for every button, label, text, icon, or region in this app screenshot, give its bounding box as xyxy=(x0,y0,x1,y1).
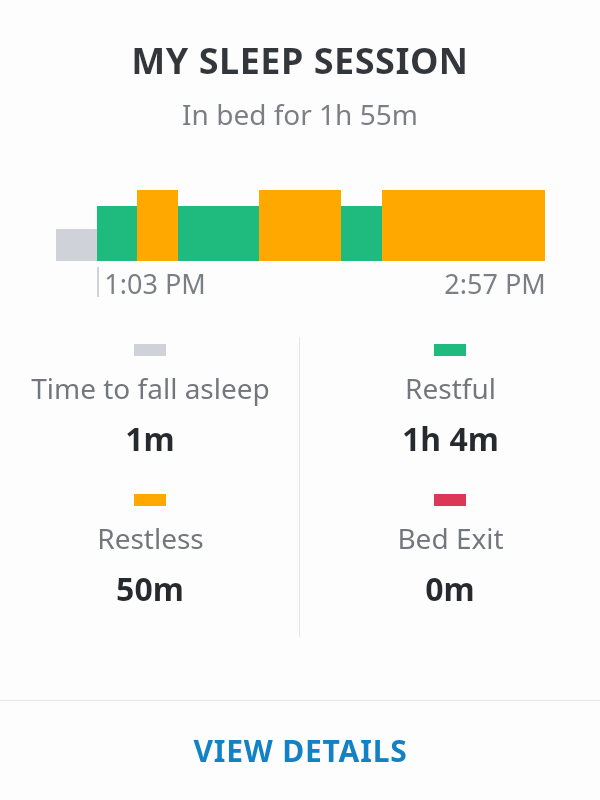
staticText: 2:57 PM xyxy=(444,265,546,302)
staticText: 1h 4m xyxy=(402,417,499,461)
staticText: VIEW DETAILS xyxy=(193,730,408,771)
staticText: Bed Exit xyxy=(397,519,504,557)
staticText: 1:03 PM xyxy=(104,265,206,302)
staticText: Restful xyxy=(405,369,496,407)
button[interactable]: Restful xyxy=(300,337,600,487)
staticText: Time to fall asleep xyxy=(31,369,270,407)
staticText: Restless xyxy=(97,519,204,557)
button[interactable]: VIEW DETAILS xyxy=(0,701,600,800)
staticText: In bed for 1h 55m xyxy=(182,95,418,133)
staticText: 1m xyxy=(125,417,175,461)
staticText: MY SLEEP SESSION xyxy=(131,36,469,85)
button[interactable]: Bed Exit xyxy=(300,487,600,637)
staticText: 0m xyxy=(425,567,475,611)
other: Sleep stage chart xyxy=(0,181,600,261)
staticText: 50m xyxy=(116,567,184,611)
button[interactable]: Time to fall asleep xyxy=(0,337,300,487)
button[interactable]: Restless xyxy=(0,487,300,637)
